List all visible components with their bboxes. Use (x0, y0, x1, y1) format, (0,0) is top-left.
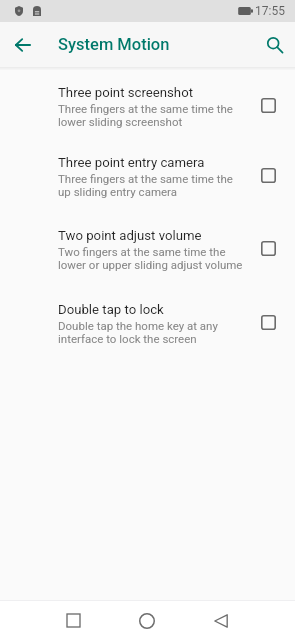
staticText: Double tap to lock (58, 302, 164, 317)
staticText: Three point screenshot (58, 85, 193, 100)
staticText: interface to lock the screen (58, 332, 197, 345)
staticText: Three fingers at the same time the (58, 102, 233, 115)
staticText: up sliding entry camera (58, 185, 178, 198)
button[interactable]: Two point adjust volume (0, 209, 295, 282)
staticText: Three point entry camera (58, 155, 205, 170)
button[interactable]: Recents (37, 601, 110, 640)
button[interactable]: Three point entry camera (0, 137, 295, 209)
staticText: Two point adjust volume (58, 228, 202, 243)
staticText: Three fingers at the same time the (58, 172, 233, 185)
staticText: Double tap the home key at any (58, 319, 218, 332)
button[interactable]: Home (110, 601, 184, 640)
staticText: Two fingers at the same time the (58, 245, 226, 258)
button[interactable]: Back (0, 22, 46, 67)
staticText: 17:55 (255, 4, 285, 18)
button[interactable]: Three point screenshot (0, 70, 295, 137)
staticText: System Motion (58, 35, 170, 54)
button[interactable]: Double tap to lock (0, 282, 295, 356)
button[interactable]: Search (255, 25, 295, 65)
staticText: lower or upper sliding adjust volume (58, 258, 243, 271)
staticText: lower sliding screenshot (58, 115, 183, 128)
button[interactable]: Back (184, 601, 258, 640)
